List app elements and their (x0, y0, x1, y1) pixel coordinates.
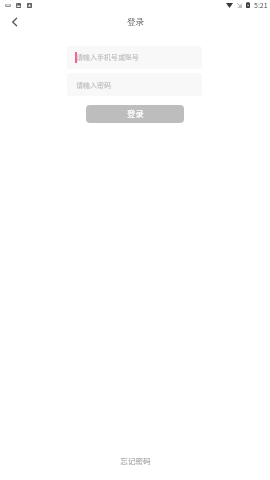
button[interactable]: 请输入密码 (67, 73, 202, 96)
staticText: 请输入密码 (76, 80, 111, 90)
button[interactable]: Back (4, 12, 24, 32)
staticText: 登录 (127, 107, 144, 119)
staticText: 登录 (127, 17, 145, 28)
staticText: 忘记密码 (120, 455, 151, 466)
button[interactable]: 忘记密码 (110, 451, 161, 470)
button[interactable]: 登录 (86, 105, 184, 123)
staticText: 5:21 (254, 0, 268, 10)
button[interactable]: 请输入手机号或账号 (67, 46, 202, 69)
staticText: 请输入手机号或账号 (76, 52, 139, 62)
